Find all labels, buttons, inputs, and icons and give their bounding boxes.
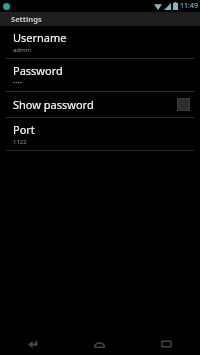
button[interactable]: Home xyxy=(66,333,133,355)
staticText: Show password xyxy=(13,97,177,112)
staticText: •••• xyxy=(13,79,23,87)
button[interactable]: Password xyxy=(0,59,200,91)
button[interactable]: Recent apps xyxy=(133,333,200,355)
button[interactable]: Back xyxy=(0,333,66,355)
staticText: Port xyxy=(13,122,35,137)
button[interactable]: Port xyxy=(0,118,200,150)
staticText: Username xyxy=(13,30,67,45)
button[interactable]: Username xyxy=(0,26,200,58)
staticText: 1122 xyxy=(13,138,27,146)
button[interactable]: Show password xyxy=(0,92,200,117)
staticText: admin xyxy=(13,46,31,54)
staticText: Password xyxy=(13,63,63,78)
staticText: 11:49 xyxy=(180,1,198,11)
staticText: Settings xyxy=(11,14,42,24)
